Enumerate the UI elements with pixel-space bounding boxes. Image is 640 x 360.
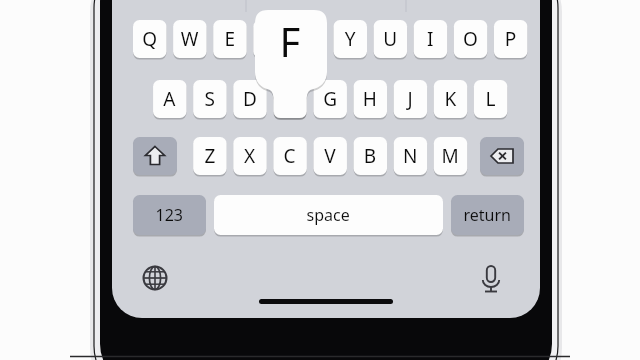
button[interactable]: iPhone keyboard screenshot xyxy=(0,0,640,360)
